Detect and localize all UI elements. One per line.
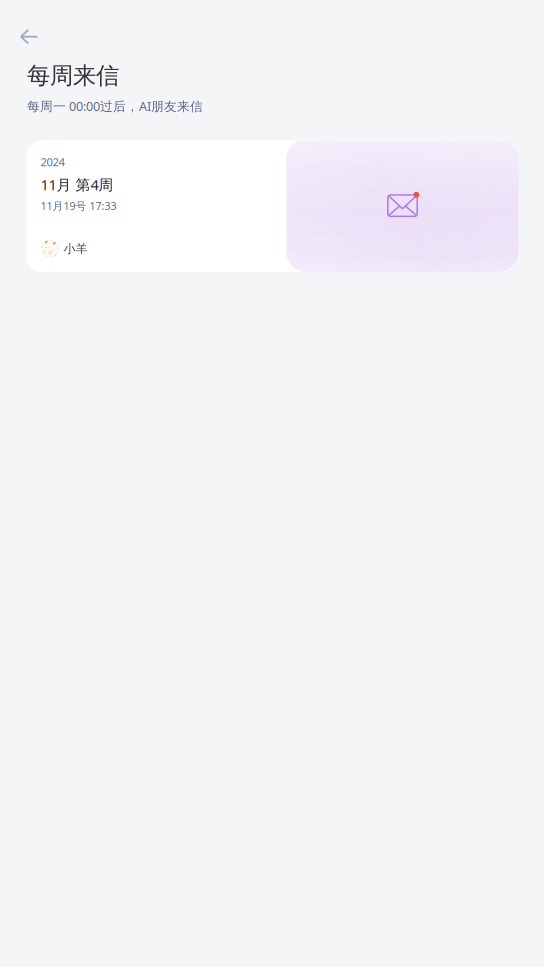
staticText: 2024 <box>40 154 64 169</box>
staticText: 每周来信 <box>27 61 119 90</box>
staticText: 11月19号 17:33 <box>40 199 116 213</box>
button[interactable]: Back <box>10 21 48 53</box>
staticText: 小羊 <box>63 241 87 256</box>
staticText: 11月 第4周 <box>40 175 113 195</box>
staticText: 每周一 00:00过后，AI朋友来信 <box>27 97 203 115</box>
button[interactable]: 2024 <box>26 141 517 273</box>
